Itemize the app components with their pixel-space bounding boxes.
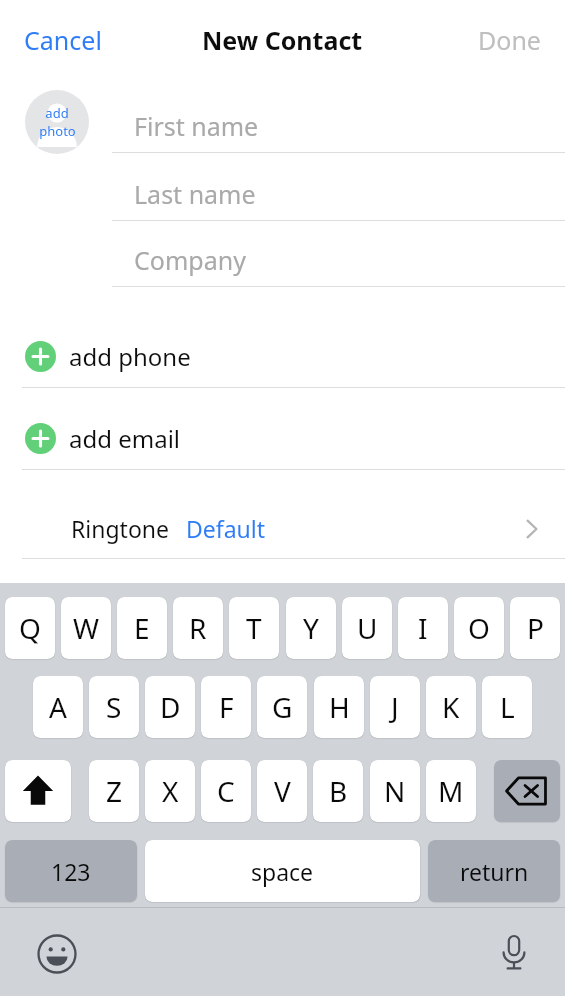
button[interactable]: N (370, 760, 420, 822)
staticText: Default (186, 513, 266, 544)
staticText: V (274, 772, 291, 810)
button[interactable]: add email (0, 400, 565, 477)
staticText: add (45, 104, 69, 122)
staticText: Y (303, 609, 319, 647)
staticText: E (134, 609, 150, 647)
button[interactable]: O (454, 597, 504, 659)
staticText: 123 (51, 856, 91, 887)
staticText: J (391, 688, 399, 726)
staticText: Z (106, 772, 123, 810)
staticText: I (418, 609, 428, 647)
button[interactable]: R (173, 597, 223, 659)
button[interactable]: A (33, 676, 83, 738)
button[interactable]: First name (112, 100, 565, 152)
staticText: R (189, 609, 207, 647)
button[interactable]: W (61, 597, 111, 659)
button[interactable]: add photo (25, 90, 89, 154)
button[interactable]: Emoji keyboard (36, 933, 78, 975)
button[interactable]: T (229, 597, 279, 659)
button[interactable]: H (314, 676, 364, 738)
button[interactable]: add phone (0, 318, 565, 395)
button[interactable]: K (426, 676, 476, 738)
staticText: S (106, 688, 122, 726)
staticText: add email (69, 422, 181, 455)
staticText: add phone (69, 340, 191, 373)
button[interactable]: Ringtone (0, 499, 565, 558)
staticText: O (468, 609, 490, 647)
staticText: Company (134, 243, 246, 277)
staticText: Last name (134, 177, 256, 211)
staticText: P (527, 609, 544, 647)
button[interactable]: U (342, 597, 392, 659)
staticText: M (438, 772, 464, 810)
staticText: N (384, 772, 406, 810)
button[interactable]: Done (470, 15, 549, 65)
button[interactable]: space (145, 840, 420, 902)
button[interactable]: Z (89, 760, 139, 822)
button[interactable]: F (201, 676, 251, 738)
staticText: B (329, 772, 348, 810)
button[interactable]: return (428, 840, 560, 902)
button[interactable]: M (426, 760, 476, 822)
button[interactable]: L (482, 676, 532, 738)
button[interactable]: Q (5, 597, 55, 659)
button[interactable]: Y (286, 597, 336, 659)
staticText: return (460, 856, 529, 887)
staticText: photo (39, 122, 76, 140)
staticText: X (162, 772, 179, 810)
staticText: T (246, 609, 262, 647)
button[interactable]: Shift (5, 760, 71, 822)
button[interactable]: Last name (112, 168, 565, 220)
button[interactable]: D (145, 676, 195, 738)
staticText: Q (19, 609, 41, 647)
staticText: space (251, 856, 314, 887)
button[interactable]: 123 (5, 840, 137, 902)
button[interactable]: I (398, 597, 448, 659)
button[interactable]: B (313, 760, 363, 822)
staticText: H (329, 688, 350, 726)
staticText: W (73, 609, 100, 647)
button[interactable]: Dictation (494, 932, 534, 972)
button[interactable]: P (510, 597, 560, 659)
staticText: New Contact (202, 23, 363, 57)
button[interactable]: C (201, 760, 251, 822)
button[interactable]: X (145, 760, 195, 822)
staticText: First name (134, 109, 259, 143)
button[interactable]: V (257, 760, 307, 822)
button[interactable]: S (89, 676, 139, 738)
staticText: F (219, 688, 234, 726)
button[interactable]: Delete (494, 760, 560, 822)
staticText: Ringtone (71, 513, 170, 544)
button[interactable]: E (117, 597, 167, 659)
button[interactable]: J (370, 676, 420, 738)
staticText: Done (478, 23, 541, 57)
button[interactable]: G (257, 676, 307, 738)
staticText: D (160, 688, 181, 726)
button[interactable]: Company (112, 234, 565, 286)
staticText: K (442, 688, 460, 726)
staticText: A (49, 688, 67, 726)
staticText: U (357, 609, 378, 647)
staticText: L (500, 688, 515, 726)
staticText: Cancel (24, 23, 102, 57)
staticText: G (272, 688, 293, 726)
button[interactable]: Cancel (16, 15, 110, 65)
staticText: C (217, 772, 235, 810)
